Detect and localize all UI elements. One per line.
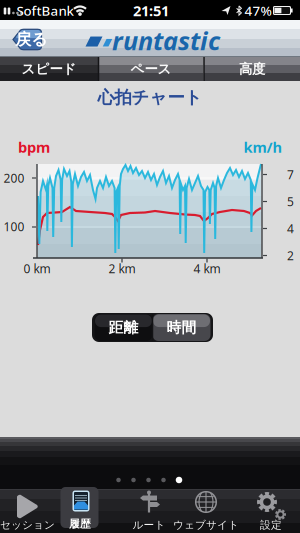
button[interactable]: ウェブサイト [175, 489, 237, 533]
button[interactable]: 距離 [94, 314, 152, 341]
staticText: ペース [130, 61, 171, 77]
staticText: 2 km [108, 260, 135, 276]
button[interactable]: ペース [98, 57, 203, 81]
staticText: 履歴 [69, 517, 91, 530]
staticText: 5 [287, 193, 294, 209]
staticText: SoftBank [16, 2, 73, 19]
staticText: 戻る [15, 30, 47, 49]
staticText: 0 km [23, 260, 50, 276]
staticText: 距離 [108, 318, 138, 336]
staticText: スピード [21, 61, 76, 77]
staticText: ウェブサイト [173, 518, 239, 531]
staticText: 4 km [193, 260, 220, 276]
staticText: 2 [287, 247, 294, 263]
staticText: セッション [0, 518, 55, 531]
button[interactable]: ルート [125, 489, 173, 533]
button[interactable]: セッション [0, 489, 55, 533]
staticText: 設定 [260, 518, 282, 531]
staticText: 100 [3, 218, 24, 234]
staticText: 200 [3, 170, 24, 186]
staticText: ルート [132, 518, 165, 531]
staticText: 高度 [239, 61, 265, 77]
staticText: km/h [243, 137, 282, 157]
button[interactable]: 設定 [247, 489, 295, 533]
button[interactable]: スピード [0, 57, 98, 81]
button[interactable]: 履歴 [60, 488, 100, 532]
staticText: 心拍チャート [97, 87, 202, 108]
button[interactable]: 時間 [152, 314, 210, 341]
staticText: 47% [244, 2, 271, 19]
staticText: bpm [18, 137, 50, 157]
staticText: 7 [287, 166, 294, 182]
staticText: 21:51 [133, 1, 169, 20]
staticText: runtastic [112, 24, 220, 57]
button[interactable]: Back [12, 28, 42, 50]
staticText: 時間 [166, 318, 196, 336]
staticText: 4 [287, 220, 294, 236]
button[interactable]: 高度 [204, 57, 300, 81]
